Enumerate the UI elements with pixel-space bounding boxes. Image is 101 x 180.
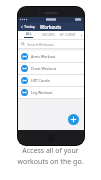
button[interactable]: Add workout (68, 114, 79, 125)
button[interactable]: HIIT Cardio (18, 75, 84, 86)
staticText: Leg Workout (31, 90, 53, 95)
staticText: HIIT Cardio (31, 78, 51, 83)
button[interactable]: Search Workouts (21, 40, 81, 48)
button[interactable]: GROUPS (38, 31, 58, 39)
staticText: Chest Workout (31, 66, 57, 71)
button[interactable]: Leg Workout (18, 87, 84, 98)
staticText: Workouts (40, 24, 62, 30)
staticText: ALL (26, 32, 32, 36)
staticText: Today (24, 24, 36, 29)
staticText: Search Workouts (27, 42, 54, 47)
button[interactable]: BY CLIENT (58, 31, 78, 39)
button[interactable]: Arms Workout (18, 51, 84, 62)
staticText: Access all of your workouts on the go. (8, 146, 93, 166)
button[interactable]: ALL (18, 31, 38, 39)
button[interactable]: Chest Workout (18, 63, 84, 74)
staticText: BY CLIENT (60, 33, 76, 37)
staticText: Arms Workout (31, 54, 56, 59)
button[interactable]: Today (20, 24, 36, 29)
staticText: GROUPS (42, 33, 55, 37)
button[interactable]: More tabs (78, 31, 84, 39)
